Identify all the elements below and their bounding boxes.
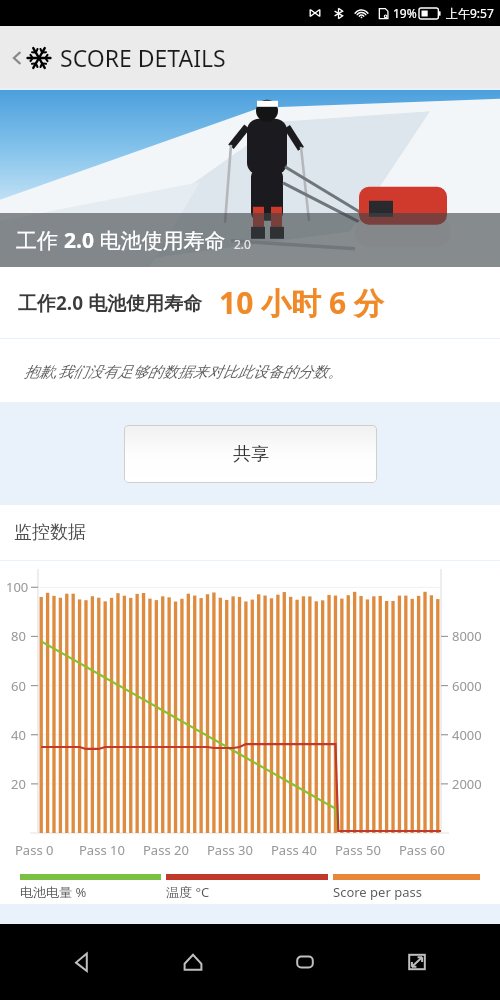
staticText: 20 (11, 775, 26, 793)
staticText: 6000 (452, 677, 482, 695)
staticText: 电池使用寿命 (94, 226, 226, 255)
staticText: 10 小时 6 分 (219, 282, 384, 323)
button[interactable]: Score per pass (333, 874, 480, 901)
button[interactable]: 温度 °C (166, 874, 328, 901)
staticText: 工作 (16, 226, 64, 255)
button[interactable]: Home (164, 933, 222, 991)
staticText: 温度 °C (166, 883, 210, 901)
staticText: 共享 (233, 443, 269, 466)
button[interactable]: Back to score details (0, 26, 500, 88)
staticText: 4000 (452, 726, 482, 744)
staticText: Pass 50 (335, 841, 381, 859)
staticText: 工作2.0 电池使用寿命 (18, 290, 203, 316)
staticText: Pass 0 (15, 841, 54, 859)
staticText: 80 (11, 627, 26, 645)
staticText: 监控数据 (14, 521, 86, 544)
staticText: Pass 20 (143, 841, 189, 859)
staticText: 8000 (452, 627, 482, 645)
staticText: 抱歉,我们没有足够的数据来对比此设备的分数。 (24, 361, 343, 381)
staticText: 60 (11, 677, 26, 695)
staticText: Pass 10 (79, 841, 125, 859)
button[interactable]: Back (53, 933, 111, 991)
staticText: 2.0 (64, 226, 94, 255)
staticText: Pass 60 (399, 841, 445, 859)
staticText: 上午9:57 (446, 5, 494, 21)
staticText: Pass 40 (271, 841, 317, 859)
button[interactable]: Fullscreen (388, 933, 446, 991)
button[interactable]: Recents (276, 933, 334, 991)
staticText: 2000 (452, 775, 482, 793)
staticText: 19% (393, 5, 417, 21)
staticText: Pass 30 (207, 841, 253, 859)
staticText: Score per pass (333, 883, 422, 901)
staticText: 电池电量 % (20, 883, 87, 901)
staticText: SCORE DETAILS (60, 42, 226, 73)
staticText: 100 (6, 578, 29, 596)
button[interactable]: 电池电量 % (20, 874, 161, 901)
staticText: 40 (11, 726, 26, 744)
button[interactable]: 共享 (124, 425, 377, 483)
staticText: 2.0 (234, 236, 251, 252)
